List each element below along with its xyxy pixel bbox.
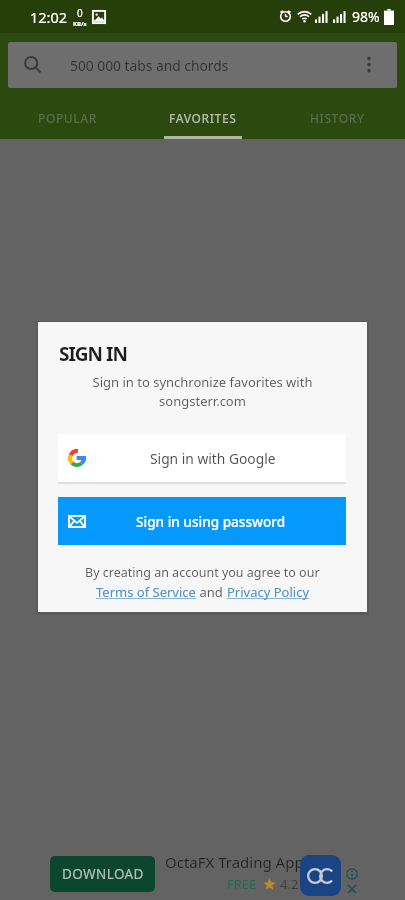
staticText: and [196,583,227,601]
staticText: 12:02 [30,7,68,27]
other: Email [68,515,86,528]
staticText: 0 [77,6,83,20]
button[interactable]: More options [359,55,379,75]
staticText: HISTORY [310,110,365,126]
button[interactable]: HISTORY [270,88,405,139]
button[interactable]: POPULAR [0,88,135,139]
button[interactable]: Ad info [346,868,358,880]
staticText: FAVORITES [169,110,237,126]
button[interactable]: Sign in with Google [58,434,346,482]
other: Search [24,56,43,75]
staticText: DOWNLOAD [62,865,144,883]
staticText: POPULAR [38,110,97,126]
button[interactable]: Close ad [346,883,358,895]
staticText: KB/s [73,20,87,28]
button[interactable]: DOWNLOAD [50,856,155,892]
button[interactable]: Email [58,497,346,545]
button[interactable]: OctaFX app icon [300,855,341,896]
staticText: By creating an account you agree to our [85,564,320,581]
button[interactable]: FAVORITES [135,88,270,139]
button[interactable]: Terms of Service [96,583,196,601]
button[interactable]: Search [8,42,397,88]
staticText: 4.2 [280,875,299,893]
staticText: Sign in with Google [150,449,276,468]
button[interactable]: Privacy Policy [227,583,310,601]
staticText: 500 000 tabs and chords [70,56,229,75]
staticText: SIGN IN [59,341,127,367]
staticText: Sign in to synchronize favorites with so… [38,373,367,410]
staticText: OctaFX Trading App [165,852,304,872]
staticText: 98% [352,7,380,26]
staticText: Sign in using password [136,512,286,531]
staticText: FREE [227,875,257,893]
